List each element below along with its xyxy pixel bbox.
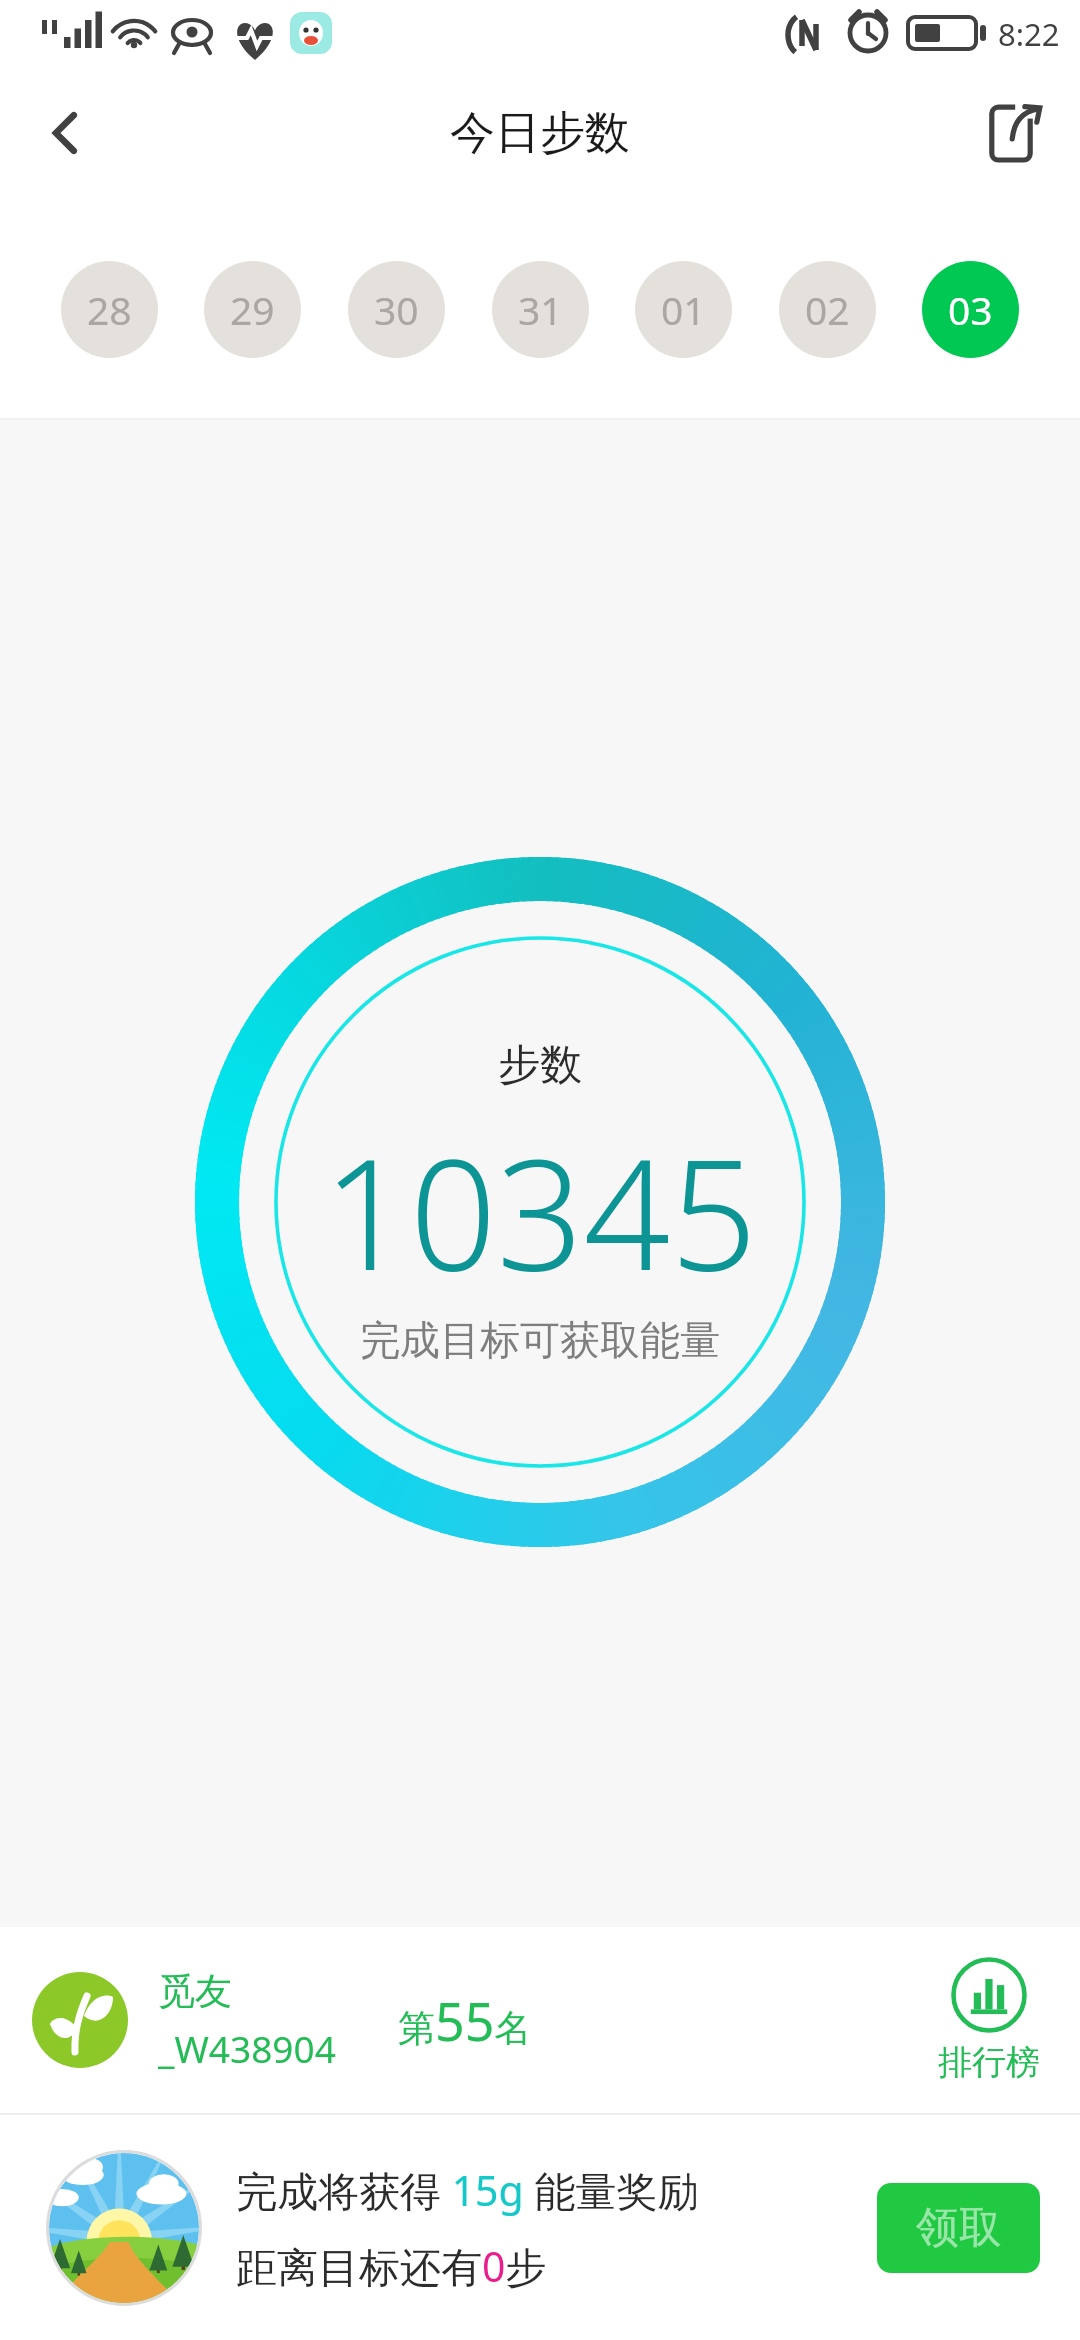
button[interactable]: 觅友 <box>0 1927 1080 2113</box>
staticText: 领取 <box>916 2201 1002 2255</box>
staticText: 03 <box>948 283 993 336</box>
button[interactable]: 完成将获得 15g 能量奖励 <box>0 2115 1080 2340</box>
button[interactable]: 28 <box>61 261 158 358</box>
staticText: 02 <box>805 283 850 336</box>
staticText: 距离目标还有0步 <box>236 2238 547 2294</box>
button[interactable]: Back <box>0 68 132 198</box>
button[interactable]: 01 <box>635 261 732 358</box>
staticText: 01 <box>661 283 706 336</box>
button[interactable]: 31 <box>492 261 589 358</box>
staticText: 第55名 <box>398 1985 532 2056</box>
staticText: 31 <box>518 283 563 336</box>
staticText: 完成将获得 15g 能量奖励 <box>236 2162 699 2218</box>
staticText: 29 <box>230 283 275 336</box>
staticText: 排行榜 <box>938 2041 1040 2084</box>
staticText: 完成目标可获取能量 <box>360 1315 720 1365</box>
staticText: 觅友 <box>158 1968 232 2015</box>
button[interactable]: 02 <box>779 261 876 358</box>
staticText: 8:22 <box>998 13 1060 55</box>
button[interactable]: 30 <box>348 261 445 358</box>
staticText: 30 <box>374 283 419 336</box>
button[interactable]: 排行榜 <box>938 1957 1040 2084</box>
staticText: 今日步数 <box>450 105 630 162</box>
button[interactable]: 03 <box>922 261 1019 358</box>
button[interactable]: 29 <box>204 261 301 358</box>
button[interactable]: 领取 <box>877 2183 1040 2273</box>
staticText: 10345 <box>323 1108 757 1315</box>
staticText: 28 <box>87 283 132 336</box>
staticText: _W438904 <box>158 2023 336 2073</box>
staticText: 步数 <box>498 1039 582 1092</box>
button[interactable]: Share <box>948 68 1080 198</box>
